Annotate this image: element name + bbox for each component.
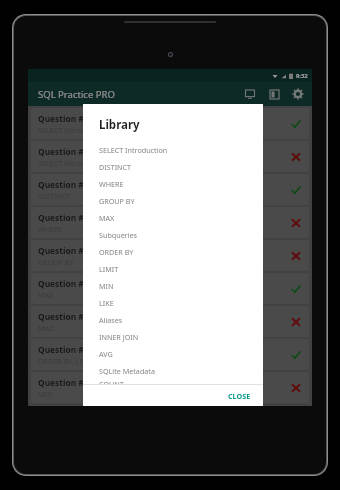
staticText: COUNT: [99, 379, 124, 384]
button[interactable]: Question #2: [31, 141, 309, 172]
button[interactable]: Settings: [290, 86, 306, 102]
staticText: Question #9: [38, 377, 89, 388]
staticText: MIN: [99, 281, 114, 291]
staticText: INNER JOIN: [99, 332, 139, 342]
staticText: MIN: [38, 389, 53, 399]
staticText: WHERE: [99, 179, 124, 189]
button[interactable]: Subqueries: [83, 226, 263, 243]
staticText: Question #8: [38, 344, 89, 355]
staticText: Question #4: [38, 212, 89, 223]
staticText: SELECT Introduction: [38, 158, 107, 168]
staticText: ORDER BY, LIMIT: [38, 356, 95, 366]
button[interactable]: SQLite Metadata: [83, 362, 263, 379]
staticText: GROUP BY: [99, 196, 135, 206]
button[interactable]: Question #9: [31, 372, 309, 403]
button[interactable]: MIN: [83, 277, 263, 294]
button[interactable]: WHERE: [83, 175, 263, 192]
button[interactable]: AVG: [83, 345, 263, 362]
staticText: Question #1: [38, 113, 89, 124]
staticText: DISTINCT: [99, 162, 132, 172]
button[interactable]: SELECT Introduction: [83, 141, 263, 158]
staticText: DISTINCT: [38, 191, 71, 201]
button[interactable]: MAX: [83, 209, 263, 226]
staticText: GROUP BY: [38, 257, 74, 267]
button[interactable]: Desktop: [242, 86, 258, 102]
staticText: MAX: [38, 323, 54, 333]
button[interactable]: Question #3: [31, 174, 309, 205]
button[interactable]: INNER JOIN: [83, 328, 263, 345]
staticText: LIKE: [99, 298, 114, 308]
button[interactable]: Question #5: [31, 240, 309, 271]
staticText: 9:32: [296, 72, 308, 80]
staticText: Question #6: [38, 278, 89, 289]
staticText: MAX: [38, 290, 54, 300]
staticText: MAX: [99, 213, 115, 223]
staticText: Question #7: [38, 311, 89, 322]
button[interactable]: LIMIT: [83, 260, 263, 277]
staticText: Aliases: [99, 315, 123, 325]
staticText: Question #3: [38, 179, 89, 190]
button[interactable]: Question #4: [31, 207, 309, 238]
staticText: WHERE: [38, 224, 63, 234]
button[interactable]: Library: [266, 86, 282, 102]
staticText: ORDER BY: [99, 247, 134, 257]
button[interactable]: LIKE: [83, 294, 263, 311]
staticText: LIMIT: [99, 264, 119, 274]
staticText: AVG: [99, 349, 113, 359]
staticText: Subqueries: [99, 230, 138, 240]
button[interactable]: Question #7: [31, 306, 309, 337]
staticText: CLOSE: [228, 391, 251, 401]
button[interactable]: GROUP BY: [83, 192, 263, 209]
button[interactable]: COUNT: [83, 379, 263, 384]
staticText: SELECT Introduction: [99, 145, 168, 155]
button[interactable]: Question #6: [31, 273, 309, 304]
button[interactable]: Question #1: [31, 108, 309, 139]
button[interactable]: ORDER BY: [83, 243, 263, 260]
staticText: Question #2: [38, 146, 89, 157]
button[interactable]: Question #8: [31, 339, 309, 370]
staticText: SQLite Metadata: [99, 366, 155, 376]
staticText: SELECT Introduction: [38, 125, 107, 135]
staticText: Question #5: [38, 245, 89, 256]
button[interactable]: CLOSE: [216, 387, 263, 405]
staticText: Library: [99, 117, 140, 133]
button[interactable]: DISTINCT: [83, 158, 263, 175]
staticText: SQL Practice PRO: [38, 88, 115, 101]
button[interactable]: Aliases: [83, 311, 263, 328]
